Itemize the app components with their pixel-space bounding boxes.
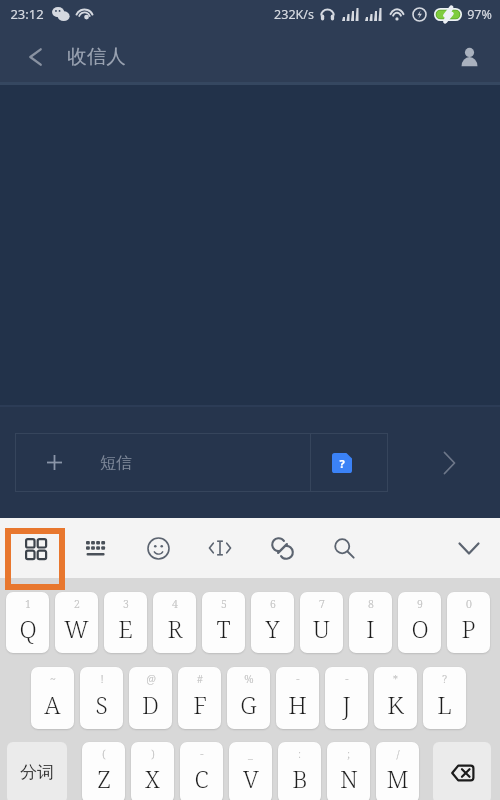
staticText: 9 [417,597,423,611]
staticText: - [345,672,349,686]
button[interactable]: Panel [5,528,65,590]
button[interactable]: Backspace [433,742,491,800]
button[interactable]: 4 [153,592,196,653]
staticText: - [200,747,204,761]
button[interactable]: * [374,667,417,729]
button[interactable]: ? [423,667,466,729]
staticText: 7 [319,597,325,611]
button[interactable]: Back [0,28,67,85]
staticText: F [193,688,207,721]
staticText: - [296,672,300,686]
staticText: 23:12 [10,5,44,23]
staticText: Y [265,612,280,645]
staticText: W [64,612,89,645]
button[interactable]: Attachment [251,518,313,578]
button[interactable]: ! [80,667,123,729]
button[interactable]: ~ [31,667,74,729]
staticText: Q [19,612,37,645]
staticText: 232K/s [274,6,314,23]
staticText: J [342,688,351,721]
staticText: 分词 [20,762,54,783]
button[interactable]: ( [82,742,125,800]
staticText: O [411,612,429,645]
staticText: 6 [270,597,276,611]
button[interactable]: 7 [300,592,343,653]
button[interactable]: - [325,667,368,729]
button[interactable]: 5 [202,592,245,653]
button[interactable]: 1 [6,592,49,653]
staticText: 3 [123,597,129,611]
button[interactable]: 6 [251,592,294,653]
staticText: P [461,612,476,645]
button[interactable]: Send [418,433,480,492]
button[interactable]: 短信 [15,433,388,492]
staticText: D [142,688,159,721]
button[interactable]: / [376,742,419,800]
staticText: E [118,612,133,645]
staticText: N [340,762,358,795]
button[interactable]: Keyboard layout [65,518,127,578]
staticText: M [386,762,409,795]
staticText: ! [100,672,104,686]
staticText: 8 [368,597,374,611]
staticText: ; [347,747,350,761]
staticText: 4 [172,597,178,611]
staticText: 1 [25,597,31,611]
staticText: L [437,688,452,721]
button[interactable]: 0 [447,592,490,653]
button[interactable]: _ [229,742,272,800]
staticText: 2 [74,597,80,611]
staticText: 97% [467,6,492,23]
staticText: / [396,747,400,761]
staticText: @ [146,672,156,686]
staticText: * [393,672,398,686]
staticText: A [44,688,61,721]
staticText: U [313,612,330,645]
staticText: T [216,612,231,645]
staticText: ) [151,747,155,761]
staticText: G [240,688,257,721]
button[interactable]: 2 [55,592,98,653]
button[interactable]: Text editing [189,518,251,578]
button[interactable]: 3 [104,592,147,653]
button[interactable]: % [227,667,270,729]
button[interactable]: Hide keyboard [438,518,500,578]
staticText: H [288,688,307,721]
button[interactable]: Emoji [127,518,189,578]
button[interactable]: ; [327,742,370,800]
button[interactable]: - [180,742,223,800]
button[interactable]: 9 [398,592,441,653]
button[interactable]: 8 [349,592,392,653]
button[interactable]: Search [313,518,375,578]
staticText: 短信 [100,453,132,473]
button[interactable]: - [276,667,319,729]
staticText: C [194,762,209,795]
staticText: : [298,747,301,761]
staticText: 0 [466,597,472,611]
staticText: 收信人 [67,44,126,69]
staticText: V [243,762,259,795]
staticText: B [292,762,308,795]
staticText: R [167,612,183,645]
button[interactable]: ) [131,742,174,800]
staticText: 5 [221,597,227,611]
staticText: K [387,688,404,721]
staticText: ( [102,747,106,761]
staticText: ? [339,456,345,471]
staticText: ? [442,672,447,686]
staticText: # [197,672,203,686]
staticText: % [244,672,254,686]
staticText: I [366,612,375,645]
button[interactable]: @ [129,667,172,729]
button[interactable]: # [178,667,221,729]
button[interactable]: Contact [438,28,500,85]
button[interactable]: 分词 [7,742,67,800]
staticText: S [95,688,108,721]
button[interactable]: : [278,742,321,800]
staticText: ~ [50,672,56,686]
staticText: _ [248,747,253,761]
staticText: X [145,762,160,795]
staticText: Z [97,762,111,795]
